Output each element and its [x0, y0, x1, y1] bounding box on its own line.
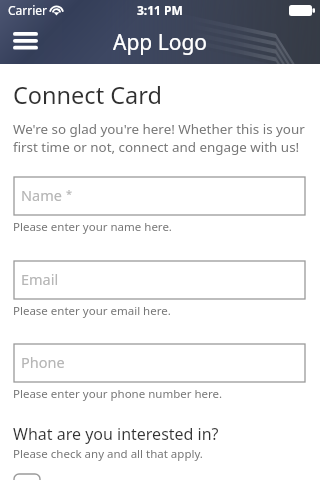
staticText: We're so glad you're here! Whether this … [13, 120, 305, 156]
staticText: Please enter your email here. [13, 303, 171, 319]
staticText: Email [21, 269, 59, 289]
button[interactable]: Small Groups [14, 474, 130, 480]
staticText: 3:11 PM [137, 2, 183, 18]
staticText: Connect Card [13, 79, 162, 111]
staticText: Please enter your phone number here. [13, 386, 223, 402]
staticText: Please enter your name here. [13, 219, 172, 235]
staticText: Please check any and all that apply. [13, 446, 203, 462]
button[interactable]: Menu [13, 32, 38, 52]
button[interactable]: Phone [14, 344, 305, 382]
button[interactable]: Name [14, 177, 305, 215]
staticText: What are you interested in? [13, 423, 219, 445]
staticText: * [66, 186, 73, 201]
staticText: App Logo [113, 28, 208, 57]
staticText: Name [21, 185, 62, 205]
staticText: Phone [21, 352, 65, 372]
staticText: Carrier [8, 2, 48, 18]
button[interactable]: Email [14, 261, 305, 299]
